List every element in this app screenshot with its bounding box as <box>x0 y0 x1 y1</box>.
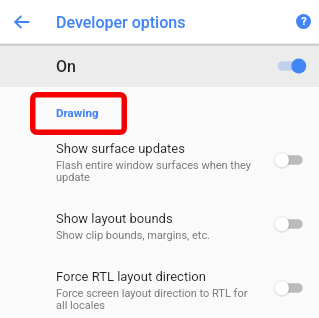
staticText: Developer options <box>56 13 186 32</box>
staticText: Force RTL layout direction <box>56 269 206 284</box>
staticText: Force screen layout direction to RTL for <box>56 287 248 299</box>
staticText: Drawing <box>56 106 99 120</box>
button[interactable]: On <box>0 44 319 87</box>
button[interactable]: Help <box>286 0 319 44</box>
button[interactable]: Force RTL layout direction <box>0 263 319 318</box>
staticText: ? <box>301 15 307 28</box>
staticText: On <box>56 57 76 76</box>
button[interactable]: Show layout bounds <box>0 205 319 263</box>
staticText: Show surface updates <box>56 141 185 156</box>
staticText: update <box>56 171 90 183</box>
staticText: all locales <box>56 299 105 311</box>
staticText: Show layout bounds <box>56 211 173 226</box>
staticText: Show clip bounds, margins, etc. <box>56 229 211 241</box>
button[interactable]: Show surface updates <box>0 135 319 205</box>
button[interactable]: Navigate up <box>0 0 43 44</box>
staticText: Flash entire window surfaces when they <box>56 159 251 171</box>
